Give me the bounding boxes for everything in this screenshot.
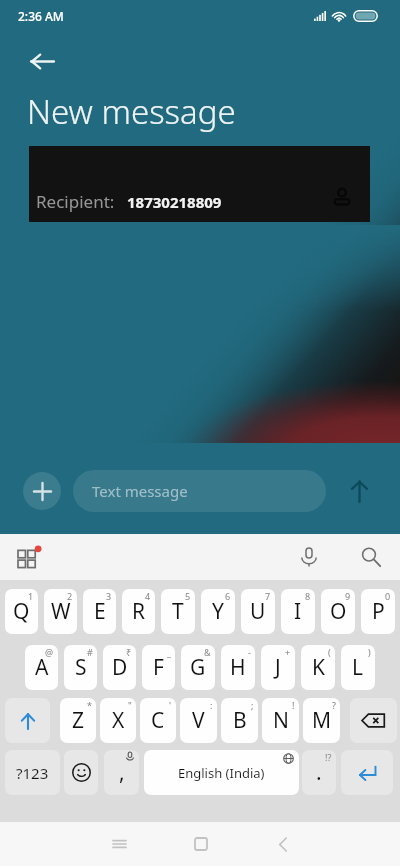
staticText: J [275, 653, 281, 682]
button[interactable]: S [64, 645, 97, 690]
button[interactable]: L [341, 645, 375, 690]
staticText: I [294, 597, 302, 626]
button[interactable]: Keyboard menu [10, 539, 46, 575]
staticText: S [75, 653, 87, 682]
staticText: H [230, 653, 246, 682]
button[interactable]: B [221, 698, 258, 743]
button[interactable]: Backspace [350, 698, 397, 743]
button[interactable]: O [321, 589, 355, 634]
staticText: A [35, 653, 49, 682]
button[interactable]: J [261, 645, 295, 690]
staticText: 6 [225, 590, 231, 602]
staticText: 3 [106, 590, 112, 602]
button[interactable]: F [142, 645, 175, 690]
button[interactable]: Add attachment [23, 472, 61, 510]
staticText: C [151, 706, 165, 735]
staticText: ; [251, 699, 254, 711]
staticText: F [153, 653, 164, 682]
staticText: Y [212, 597, 224, 626]
staticText: 8 [305, 590, 311, 602]
staticText: Z [72, 706, 85, 735]
button[interactable]: E [83, 589, 116, 634]
staticText: + [285, 646, 291, 658]
staticText: T [172, 597, 184, 626]
button[interactable]: K [301, 645, 335, 690]
staticText: English (India) [178, 764, 265, 782]
button[interactable]: U [241, 589, 275, 634]
button[interactable]: Y [201, 589, 235, 634]
button[interactable]: M [303, 698, 340, 743]
staticText: R [132, 597, 146, 626]
staticText: ) [368, 646, 371, 658]
staticText: * [87, 699, 92, 711]
staticText: Q [13, 597, 30, 626]
button[interactable]: Contacts [326, 181, 358, 213]
staticText: 5 [185, 590, 191, 602]
button[interactable]: Recipient: [29, 146, 370, 222]
staticText: W [51, 597, 71, 626]
button[interactable]: Z [60, 698, 96, 743]
button[interactable]: G [181, 645, 215, 690]
staticText: !? [325, 751, 332, 763]
staticText: ( [328, 646, 331, 658]
button[interactable]: C [140, 698, 176, 743]
staticText: O [330, 597, 347, 626]
staticText: X [112, 706, 125, 735]
button[interactable]: Enter [341, 750, 393, 795]
staticText: G [190, 653, 206, 682]
staticText: 4 [145, 590, 151, 602]
button[interactable]: R [122, 589, 155, 634]
button[interactable]: Q [5, 589, 38, 634]
staticText: ₹ [126, 646, 132, 658]
button[interactable]: Text message [73, 470, 326, 512]
staticText: P [372, 597, 385, 626]
button[interactable]: Home [179, 822, 223, 866]
button[interactable]: Shift [5, 698, 50, 743]
staticText: B [233, 706, 247, 735]
staticText: & [204, 646, 211, 658]
button[interactable]: W [44, 589, 77, 634]
staticText: @ [45, 646, 54, 658]
staticText: . [316, 758, 322, 787]
button[interactable]: Emoji [64, 750, 98, 795]
staticText: 2:36 AM [18, 8, 64, 24]
staticText: 1 [28, 590, 34, 602]
button[interactable]: . [302, 750, 336, 795]
staticText: _ [167, 646, 171, 658]
staticText: 18730218809 [127, 192, 222, 212]
staticText: ' [169, 699, 172, 711]
button[interactable]: Search [352, 538, 390, 576]
staticText: U [250, 597, 266, 626]
button[interactable]: P [361, 589, 395, 634]
button[interactable]: Back [261, 822, 305, 866]
button[interactable]: T [161, 589, 195, 634]
staticText: 0 [385, 590, 391, 602]
button[interactable]: A [25, 645, 58, 690]
staticText: ! [292, 699, 295, 711]
button[interactable]: I [281, 589, 315, 634]
staticText: Recipient: [36, 190, 115, 213]
button[interactable]: Voice input [290, 538, 328, 576]
staticText: N [273, 706, 289, 735]
staticText: L [352, 653, 364, 682]
button[interactable]: Send [336, 468, 382, 514]
button[interactable]: D [103, 645, 136, 690]
button[interactable]: English (India) [144, 750, 299, 795]
staticText: ?123 [16, 763, 49, 783]
staticText: V [192, 706, 205, 735]
staticText: New message [27, 89, 236, 134]
staticText: 2 [67, 590, 73, 602]
button[interactable]: Recents [97, 822, 141, 866]
staticText: Text message [92, 481, 188, 501]
staticText: 9 [345, 590, 351, 602]
button[interactable]: N [262, 698, 299, 743]
button[interactable]: X [100, 698, 136, 743]
button[interactable]: , [104, 750, 139, 795]
button[interactable]: V [180, 698, 217, 743]
staticText: D [112, 653, 128, 682]
staticText: K [312, 653, 325, 682]
staticText: M [312, 706, 332, 735]
button[interactable]: ?123 [5, 750, 60, 795]
button[interactable]: Back [18, 37, 66, 85]
button[interactable]: H [221, 645, 255, 690]
